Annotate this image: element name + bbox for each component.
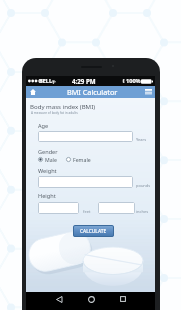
button[interactable]: Back: [54, 294, 64, 304]
button[interactable]: Recents: [118, 294, 128, 304]
staticText: pounds: [136, 183, 151, 188]
button[interactable]: [98, 202, 135, 214]
button[interactable]: CALCULATE: [73, 225, 114, 237]
button[interactable]: [38, 131, 133, 142]
staticText: BELL: [39, 77, 53, 85]
button[interactable]: Male: [38, 156, 57, 163]
staticText: Gender: [38, 148, 58, 156]
button[interactable]: Menu: [141, 86, 155, 98]
staticText: 100%: [126, 77, 141, 85]
button[interactable]: Female: [66, 156, 91, 163]
staticText: Years: [136, 137, 147, 142]
staticText: 4:29 PM: [72, 77, 96, 85]
staticText: Weight: [38, 167, 57, 175]
button[interactable]: [38, 176, 133, 188]
staticText: Height: [38, 192, 56, 200]
staticText: Female: [73, 156, 91, 163]
staticText: Male: [45, 156, 57, 163]
button[interactable]: [38, 202, 79, 214]
staticText: CALCULATE: [80, 228, 107, 235]
button[interactable]: Home: [86, 294, 96, 304]
staticText: inches: [136, 209, 149, 214]
staticText: Body mass index (BMI): [30, 102, 96, 110]
staticText: Age: [38, 122, 49, 130]
button[interactable]: Home: [26, 86, 40, 98]
staticText: feet: [83, 209, 91, 214]
staticText: BMI Calculator: [67, 87, 118, 97]
staticText: A measure of body fat in adults: [31, 111, 78, 115]
